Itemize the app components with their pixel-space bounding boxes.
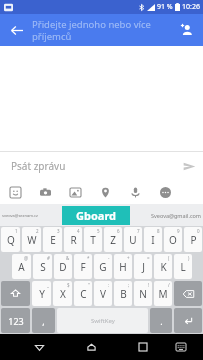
staticText: O bbox=[169, 233, 177, 247]
button[interactable]: W bbox=[22, 227, 41, 252]
button[interactable]: M bbox=[154, 281, 172, 306]
staticText: ) bbox=[188, 255, 190, 261]
button[interactable]: Y bbox=[32, 281, 51, 306]
staticText: , bbox=[42, 315, 45, 327]
staticText: J bbox=[142, 260, 145, 274]
button[interactable]: Shift bbox=[1, 281, 30, 306]
button[interactable]: Recents bbox=[130, 334, 156, 360]
button[interactable]: R bbox=[64, 227, 82, 252]
staticText: = bbox=[147, 255, 150, 261]
button[interactable]: I bbox=[144, 227, 162, 252]
button[interactable]: Back bbox=[26, 334, 52, 360]
button[interactable]: Gboard bbox=[62, 206, 130, 225]
staticText: 2 bbox=[36, 228, 39, 234]
button[interactable]: Backspace bbox=[174, 281, 202, 306]
button[interactable]: Keyboard bbox=[168, 334, 194, 360]
staticText: D bbox=[59, 260, 67, 274]
button[interactable]: Add recipient bbox=[171, 14, 203, 46]
staticText: * bbox=[87, 255, 90, 261]
button[interactable]: G bbox=[94, 254, 112, 279]
button[interactable]: X bbox=[53, 281, 72, 306]
staticText: C bbox=[80, 287, 87, 301]
button[interactable]: F bbox=[74, 254, 92, 279]
button[interactable]: B bbox=[114, 281, 132, 306]
staticText: : bbox=[108, 282, 110, 288]
staticText: Z bbox=[110, 233, 116, 247]
staticText: $ bbox=[67, 282, 70, 288]
staticText: P bbox=[190, 233, 197, 247]
staticText: E bbox=[50, 233, 56, 247]
staticText: 3 bbox=[57, 228, 60, 234]
staticText: R bbox=[70, 233, 77, 247]
staticText: @ bbox=[24, 255, 29, 261]
staticText: V bbox=[100, 287, 106, 301]
staticText: ; bbox=[128, 282, 130, 288]
staticText: - bbox=[108, 255, 110, 261]
staticText: 7 bbox=[137, 228, 140, 234]
staticText: 0 bbox=[197, 228, 200, 234]
staticText: N bbox=[139, 287, 147, 301]
button[interactable]: Gallery bbox=[60, 180, 90, 204]
staticText: SwiftKey bbox=[91, 317, 115, 325]
button[interactable]: Enter bbox=[174, 308, 202, 333]
button[interactable]: Home bbox=[78, 334, 104, 360]
staticText: 6 bbox=[117, 228, 120, 234]
button[interactable]: S bbox=[33, 254, 52, 279]
staticText: 9 bbox=[177, 228, 180, 234]
staticText: 5 bbox=[97, 228, 100, 234]
staticText: K bbox=[160, 260, 167, 274]
button[interactable]: Send bbox=[175, 152, 203, 180]
staticText: Q bbox=[7, 233, 15, 247]
button[interactable]: Sticker bbox=[0, 180, 30, 204]
staticText: Přidejte jednoho nebo více příjemců bbox=[32, 18, 167, 42]
button[interactable]: 123 bbox=[1, 308, 30, 333]
staticText: 91 % bbox=[157, 2, 173, 12]
staticText: S bbox=[40, 260, 46, 274]
button[interactable]: E bbox=[43, 227, 62, 252]
button[interactable]: Space bbox=[57, 308, 148, 333]
button[interactable]: More bbox=[150, 180, 180, 204]
button[interactable]: Location bbox=[90, 180, 120, 204]
staticText: & bbox=[66, 255, 70, 261]
button[interactable]: V bbox=[94, 281, 112, 306]
button[interactable]: , bbox=[32, 308, 55, 333]
button[interactable]: N bbox=[134, 281, 152, 306]
button[interactable]: L bbox=[174, 254, 192, 279]
button[interactable]: Psát zprávu bbox=[0, 152, 203, 180]
button[interactable]: H bbox=[114, 254, 132, 279]
button[interactable]: . bbox=[150, 308, 172, 333]
button[interactable]: O bbox=[164, 227, 182, 252]
staticText: X bbox=[60, 287, 66, 301]
button[interactable]: C bbox=[74, 281, 92, 306]
staticText: 1 bbox=[15, 228, 18, 234]
button[interactable]: A bbox=[12, 254, 31, 279]
staticText: G bbox=[99, 260, 107, 274]
button[interactable]: D bbox=[54, 254, 72, 279]
button[interactable]: U bbox=[124, 227, 142, 252]
button[interactable]: Sveova@gmail.com bbox=[151, 212, 201, 219]
staticText: I bbox=[151, 233, 155, 247]
button[interactable]: Back bbox=[0, 14, 32, 46]
staticText: Y bbox=[39, 287, 45, 301]
staticText: 123 bbox=[8, 315, 24, 327]
staticText: # bbox=[47, 255, 50, 261]
staticText: B bbox=[120, 287, 127, 301]
button[interactable]: sveova@seznam.cz bbox=[2, 213, 38, 218]
button[interactable]: Voice bbox=[120, 180, 150, 204]
staticText: " bbox=[88, 282, 90, 288]
staticText: Psát zprávu bbox=[11, 159, 175, 173]
staticText: Gboard bbox=[76, 208, 117, 223]
button[interactable]: Q bbox=[1, 227, 20, 252]
staticText: M bbox=[158, 287, 168, 301]
button[interactable]: Camera bbox=[30, 180, 60, 204]
button[interactable]: T bbox=[84, 227, 102, 252]
button[interactable]: Z bbox=[104, 227, 122, 252]
button[interactable]: K bbox=[154, 254, 172, 279]
staticText: . bbox=[160, 315, 163, 327]
staticText: U bbox=[129, 233, 137, 247]
staticText: ( bbox=[168, 255, 170, 261]
staticText: F bbox=[80, 260, 86, 274]
button[interactable]: J bbox=[134, 254, 152, 279]
button[interactable]: P bbox=[184, 227, 202, 252]
staticText: A bbox=[18, 260, 25, 274]
